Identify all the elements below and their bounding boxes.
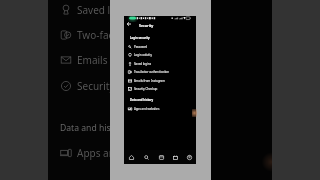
staticText: Security xyxy=(139,23,154,28)
button[interactable]: Apps and websites xyxy=(124,104,196,113)
staticText: Two-fac xyxy=(77,28,114,42)
staticText: Emails from Instagram xyxy=(134,79,165,83)
button[interactable]: Emails from Instagram xyxy=(124,76,196,85)
staticText: Apps an xyxy=(77,146,115,160)
staticText: Data and his xyxy=(60,122,111,134)
button[interactable]: Apps an xyxy=(60,146,115,160)
staticText: Login security xyxy=(130,36,150,40)
button[interactable]: Home xyxy=(124,150,139,164)
button[interactable]: Saved l xyxy=(60,3,111,17)
staticText: Emails xyxy=(77,53,111,67)
staticText: Data and history xyxy=(130,98,154,102)
staticText: Saved logins xyxy=(134,62,152,66)
button[interactable]: Saved logins xyxy=(124,59,196,68)
button[interactable]: Reels xyxy=(154,150,168,164)
staticText: Password xyxy=(134,45,148,49)
button[interactable]: Emails xyxy=(60,53,111,67)
staticText: Security xyxy=(77,79,115,93)
button[interactable]: Profile xyxy=(182,150,196,164)
button[interactable]: Search xyxy=(139,150,154,164)
staticText: Two-factor authentication xyxy=(134,70,170,74)
staticText: Saved l xyxy=(77,3,111,17)
button[interactable]: Login activity xyxy=(124,50,196,59)
button[interactable]: Password xyxy=(124,42,196,51)
button[interactable]: Security Checkup xyxy=(124,84,196,93)
button[interactable]: Two-fac xyxy=(60,28,114,42)
staticText: Apps and websites xyxy=(134,107,160,111)
button[interactable]: Shop xyxy=(168,150,182,164)
button[interactable]: Two-factor authentication xyxy=(124,67,196,76)
staticText: Security Checkup xyxy=(134,87,158,91)
button[interactable]: Security xyxy=(60,79,115,93)
staticText: Login activity xyxy=(134,53,152,57)
button[interactable]: Back xyxy=(126,21,132,27)
